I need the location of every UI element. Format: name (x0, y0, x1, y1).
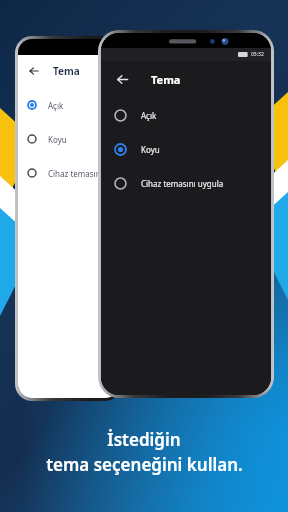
staticText: 05:32 (251, 51, 264, 58)
button[interactable]: Açık (101, 98, 271, 132)
button[interactable]: Cihaz temasını uygula (101, 166, 271, 200)
button[interactable]: Koyu (18, 122, 119, 156)
staticText: Koyu (141, 144, 160, 155)
staticText: Tema (53, 64, 80, 78)
staticText: Tema (151, 72, 181, 87)
button[interactable]: Cihaz temasını uygula (18, 156, 119, 190)
button[interactable]: Back (27, 64, 41, 78)
staticText: İstediğin (107, 428, 181, 451)
staticText: Koyu (48, 134, 67, 145)
button[interactable]: Koyu (101, 132, 271, 166)
button[interactable]: Back (101, 61, 271, 98)
staticText: tema seçeneğini kullan. (46, 453, 243, 476)
staticText: Açık (141, 110, 157, 121)
staticText: Cihaz temasını uygula (141, 178, 224, 189)
staticText: Açık (48, 100, 64, 111)
button[interactable]: Açık (18, 88, 119, 122)
staticText: Cihaz temasını uygula (48, 168, 119, 179)
button[interactable]: Back (114, 71, 131, 88)
button[interactable]: Back (18, 55, 119, 86)
